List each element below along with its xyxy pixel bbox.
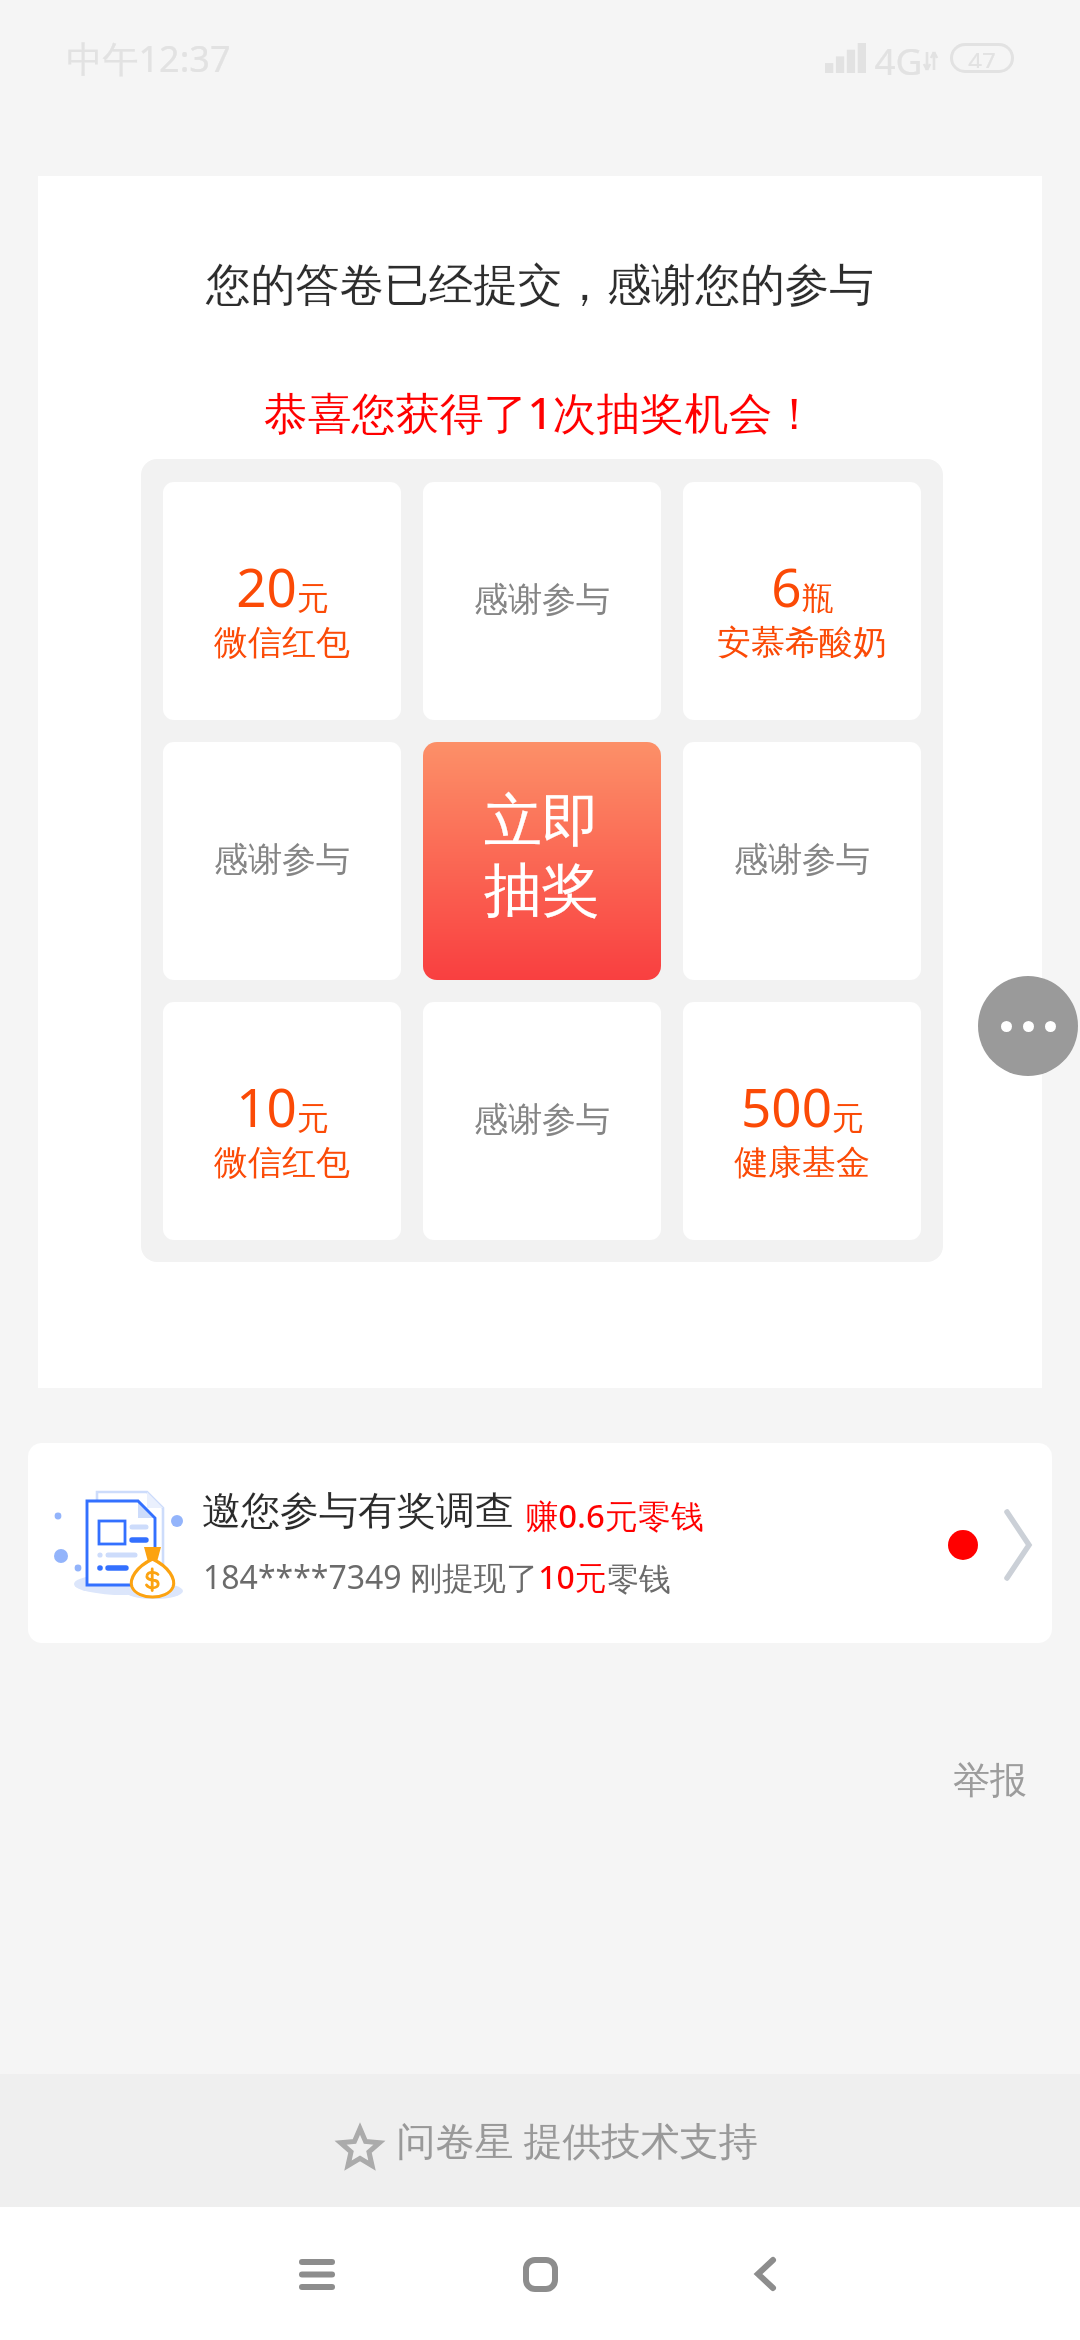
staticText: 立即 抽奖 — [484, 785, 600, 927]
staticText: 184****7349 刚提现了 — [203, 1555, 538, 1599]
staticText: 47 — [968, 46, 996, 68]
staticText: 赚0.6元零钱 — [525, 1493, 704, 1538]
staticText: 微信红包 — [214, 1141, 350, 1184]
staticText: 零钱 — [607, 1559, 671, 1599]
button[interactable]: Back — [715, 2224, 815, 2324]
button[interactable]: More options — [978, 976, 1078, 1076]
button[interactable]: 500 — [683, 1002, 921, 1240]
staticText: 健康基金 — [734, 1141, 870, 1184]
staticText: 举报 — [953, 1757, 1027, 1804]
button[interactable]: 感谢参与 — [423, 1002, 661, 1240]
staticText: 问卷星 提供技术支持 — [396, 2113, 758, 2166]
button[interactable]: 感谢参与 — [163, 742, 401, 980]
staticText: 元 — [297, 578, 329, 618]
staticText: 感谢参与 — [214, 838, 350, 881]
staticText: 恭喜您获得了1次抽奖机会！ — [38, 382, 1042, 442]
staticText: 6 — [771, 550, 802, 622]
staticText: 10元 — [538, 1555, 607, 1599]
staticText: 感谢参与 — [474, 578, 610, 621]
button[interactable]: 感谢参与 — [423, 482, 661, 720]
staticText: 感谢参与 — [734, 838, 870, 881]
staticText: 瓶 — [802, 578, 834, 618]
button[interactable]: Recent apps — [267, 2224, 367, 2324]
staticText: 500 — [741, 1070, 832, 1142]
staticText: 中午12:37 — [66, 34, 231, 83]
staticText: 10 — [236, 1070, 297, 1142]
staticText: 元 — [832, 1098, 864, 1138]
staticText: 您的答卷已经提交，感谢您的参与 — [38, 257, 1042, 313]
button[interactable]: 20 — [163, 482, 401, 720]
button[interactable]: 10 — [163, 1002, 401, 1240]
button[interactable]: 6 — [683, 482, 921, 720]
staticText: 4G — [874, 35, 923, 85]
button[interactable]: 立即 抽奖 — [423, 742, 661, 980]
button[interactable]: 邀您参与有奖调查 — [28, 1443, 1052, 1643]
button[interactable]: Home — [490, 2224, 590, 2324]
staticText: 元 — [297, 1098, 329, 1138]
button[interactable]: 举报 — [930, 1745, 1050, 1815]
staticText: 邀您参与有奖调查 — [202, 1486, 514, 1535]
staticText: 微信红包 — [214, 621, 350, 664]
staticText: 安慕希酸奶 — [717, 621, 887, 664]
staticText: 感谢参与 — [474, 1098, 610, 1141]
button[interactable]: 感谢参与 — [683, 742, 921, 980]
staticText: 20 — [236, 550, 297, 622]
